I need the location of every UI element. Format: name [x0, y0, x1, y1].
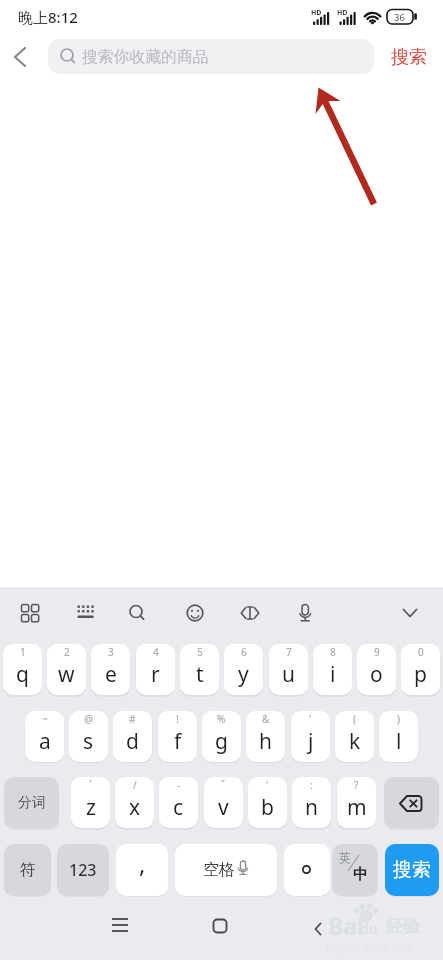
button[interactable]: 分词: [4, 777, 59, 828]
button[interactable]: ~: [25, 711, 64, 762]
button[interactable]: 符: [4, 844, 51, 896]
staticText: w: [58, 660, 75, 689]
staticText: m: [347, 793, 367, 822]
button[interactable]: 搜索: [385, 844, 439, 896]
staticText: :: [310, 778, 313, 792]
button[interactable]: 7: [269, 644, 308, 695]
staticText: n: [305, 793, 318, 822]
staticText: &: [262, 712, 270, 726]
staticText: 6: [241, 645, 247, 659]
button[interactable]: [64, 592, 106, 634]
button[interactable]: `: [71, 777, 110, 828]
button[interactable]: ,: [116, 844, 168, 896]
staticText: ': [309, 712, 312, 726]
button[interactable]: 2: [47, 644, 86, 695]
button[interactable]: [200, 905, 240, 945]
staticText: ~: [42, 712, 48, 726]
staticText: q: [16, 660, 29, 689]
button[interactable]: [48, 39, 374, 74]
staticText: g: [215, 727, 228, 756]
staticText: -: [177, 778, 181, 792]
button[interactable]: 6: [224, 644, 263, 695]
staticText: i: [330, 660, 336, 689]
staticText: c: [173, 793, 184, 822]
button[interactable]: 123: [57, 844, 109, 896]
button[interactable]: 搜索: [385, 42, 433, 72]
staticText: 0: [418, 645, 424, 659]
button[interactable]: ': [291, 711, 330, 762]
button[interactable]: /: [115, 777, 154, 828]
button[interactable]: 英: [332, 844, 378, 896]
staticText: 搜索你收藏的商品: [82, 47, 209, 67]
staticText: 晚上8:12: [18, 7, 78, 27]
staticText: 8: [330, 645, 336, 659]
staticText: ): [397, 712, 400, 726]
button[interactable]: [9, 592, 51, 634]
button[interactable]: &: [246, 711, 285, 762]
button[interactable]: [116, 592, 158, 634]
staticText: k: [349, 727, 361, 756]
staticText: 5: [197, 645, 203, 659]
staticText: 123: [69, 859, 97, 881]
staticText: HD: [337, 8, 348, 18]
button[interactable]: [284, 592, 326, 634]
staticText: !: [176, 712, 179, 726]
button[interactable]: [384, 777, 439, 828]
button[interactable]: !: [158, 711, 197, 762]
button[interactable]: @: [69, 711, 108, 762]
staticText: f: [174, 727, 182, 756]
staticText: z: [86, 793, 96, 822]
button[interactable]: [284, 844, 330, 896]
button[interactable]: [389, 592, 431, 634]
button[interactable]: 5: [180, 644, 219, 695]
button[interactable]: 9: [357, 644, 396, 695]
button[interactable]: 0: [401, 644, 440, 695]
staticText: s: [83, 727, 94, 756]
staticText: e: [105, 660, 117, 689]
button[interactable]: 3: [91, 644, 130, 695]
button[interactable]: 8: [313, 644, 352, 695]
staticText: @: [84, 712, 93, 726]
button[interactable]: 1: [3, 644, 42, 695]
staticText: #: [129, 712, 136, 726]
button[interactable]: 空格: [175, 844, 277, 896]
button[interactable]: [6, 42, 36, 72]
staticText: 中: [353, 865, 368, 884]
staticText: a: [39, 727, 51, 756]
button[interactable]: :: [292, 777, 331, 828]
staticText: ,: [139, 847, 146, 880]
staticText: 空格: [203, 860, 235, 880]
staticText: d: [126, 727, 139, 756]
staticText: 7: [286, 645, 292, 659]
button[interactable]: -: [159, 777, 198, 828]
staticText: 符: [20, 860, 36, 880]
staticText: (: [353, 712, 356, 726]
button[interactable]: [298, 905, 338, 945]
button[interactable]: [174, 592, 216, 634]
staticText: 4: [153, 645, 159, 659]
button[interactable]: ?: [337, 777, 376, 828]
staticText: du: [360, 919, 378, 938]
button[interactable]: #: [113, 711, 152, 762]
button[interactable]: ˇ: [204, 777, 243, 828]
staticText: b: [261, 793, 274, 822]
staticText: r: [151, 660, 160, 689]
staticText: j: [308, 727, 314, 756]
staticText: x: [129, 793, 141, 822]
staticText: l: [396, 727, 402, 756]
button[interactable]: [229, 592, 271, 634]
button[interactable]: %: [202, 711, 241, 762]
staticText: ˇ: [221, 778, 226, 792]
button[interactable]: 4: [136, 644, 175, 695]
staticText: %: [217, 712, 226, 726]
staticText: 3: [108, 645, 114, 659]
staticText: 英: [339, 850, 351, 865]
button[interactable]: (: [335, 711, 374, 762]
button[interactable]: [100, 905, 140, 945]
button[interactable]: ): [379, 711, 418, 762]
staticText: HD: [311, 8, 322, 18]
staticText: o: [370, 660, 383, 689]
button[interactable]: ': [248, 777, 287, 828]
staticText: 9: [374, 645, 380, 659]
